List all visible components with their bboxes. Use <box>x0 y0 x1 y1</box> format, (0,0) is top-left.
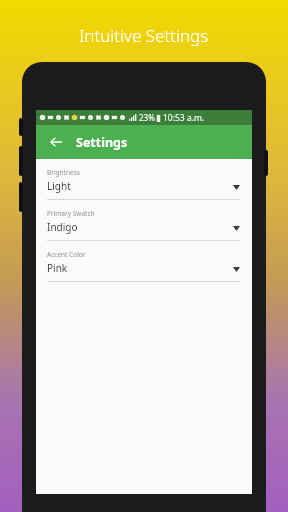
button[interactable]: Primary Swatch <box>36 200 252 241</box>
staticText: Accent Color <box>47 250 86 259</box>
staticText: 23% <box>139 112 155 123</box>
staticText: Primary Swatch <box>47 209 95 218</box>
staticText: Intuitive Settings <box>79 24 209 47</box>
staticText: Settings <box>76 134 128 151</box>
staticText: 10:53 a.m. <box>163 112 205 124</box>
staticText: Pink <box>47 261 68 275</box>
button[interactable]: Brightness <box>36 159 252 200</box>
staticText: Indigo <box>47 220 78 234</box>
staticText: Brightness <box>47 168 80 177</box>
button[interactable]: Back <box>42 128 70 156</box>
button[interactable]: Accent Color <box>36 241 252 282</box>
staticText: Light <box>47 179 71 193</box>
